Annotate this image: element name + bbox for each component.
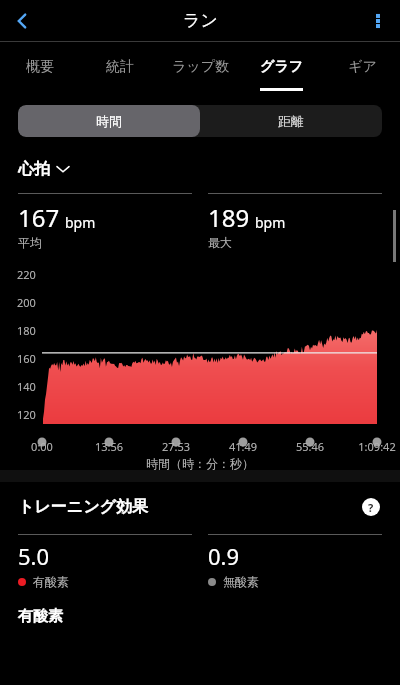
staticText: bpm — [255, 213, 286, 232]
staticText: 220 — [17, 267, 36, 282]
staticText: 5.0 — [18, 541, 50, 571]
staticText: 120 — [17, 407, 36, 422]
staticText: 189 — [208, 201, 250, 234]
button[interactable]: More options — [356, 0, 400, 41]
button[interactable]: グラフ — [253, 42, 309, 92]
staticText: 0.9 — [208, 541, 240, 571]
staticText: ラン — [183, 10, 218, 31]
staticText: 13:56 — [89, 439, 129, 454]
staticText: 距離 — [278, 113, 304, 129]
staticText: 41:49 — [223, 439, 263, 454]
staticText: 最大 — [208, 235, 232, 250]
staticText: 55:46 — [290, 439, 330, 454]
staticText: 統計 — [106, 58, 134, 76]
button[interactable]: 概要 — [12, 42, 68, 92]
button[interactable]: Help — [360, 496, 382, 518]
button[interactable]: Back — [0, 0, 44, 41]
staticText: ラップ数 — [172, 58, 229, 76]
staticText: ? — [368, 500, 374, 515]
button[interactable]: 心拍 — [18, 159, 69, 179]
staticText: bpm — [65, 213, 96, 232]
staticText: 無酸素 — [223, 574, 259, 589]
staticText: 有酸素 — [18, 607, 63, 626]
staticText: 27:53 — [156, 439, 196, 454]
staticText: 160 — [17, 351, 36, 366]
button[interactable]: ギア — [334, 42, 390, 92]
staticText: 140 — [17, 379, 36, 394]
staticText: 0:00 — [22, 439, 62, 454]
staticText: ギア — [348, 58, 377, 76]
staticText: 時間 — [96, 113, 122, 129]
staticText: 時間（時：分：秒） — [0, 456, 400, 471]
staticText: トレーニング効果 — [18, 497, 148, 517]
button[interactable]: ラップ数 — [162, 42, 238, 92]
staticText: 180 — [17, 323, 36, 338]
staticText: 200 — [17, 295, 36, 310]
button[interactable]: 時間 — [18, 105, 200, 137]
button[interactable]: 統計 — [92, 42, 148, 92]
staticText: 1:09:42 — [351, 439, 400, 454]
staticText: 心拍 — [18, 159, 50, 179]
staticText: 平均 — [18, 235, 42, 250]
staticText: 167 — [18, 201, 60, 234]
staticText: 有酸素 — [33, 574, 69, 589]
staticText: グラフ — [260, 58, 303, 76]
staticText: 概要 — [26, 58, 54, 76]
button[interactable]: 距離 — [200, 105, 382, 137]
